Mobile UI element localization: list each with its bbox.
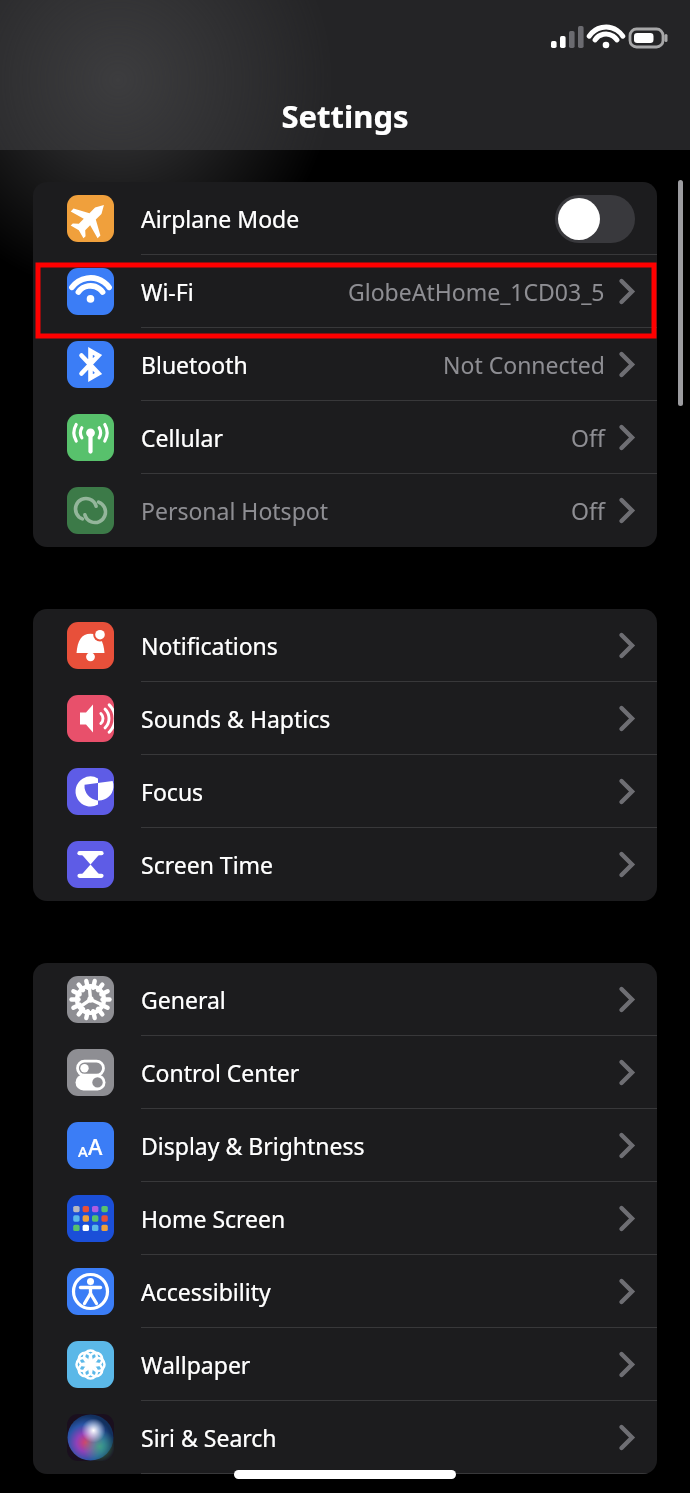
staticText: Airplane Mode bbox=[141, 203, 300, 234]
staticText: Wallpaper bbox=[141, 1349, 251, 1380]
button[interactable]: Focus bbox=[33, 755, 657, 828]
button[interactable]: Home Screen bbox=[33, 1182, 657, 1255]
staticText: Home Screen bbox=[141, 1203, 286, 1234]
button[interactable]: Siri & Search bbox=[33, 1401, 657, 1474]
button[interactable]: Airplane Mode toggle, off bbox=[555, 195, 635, 243]
staticText: Notifications bbox=[141, 630, 278, 661]
staticText: Settings bbox=[281, 95, 409, 137]
button[interactable]: Personal Hotspot bbox=[33, 474, 657, 547]
button[interactable]: Accessibility bbox=[33, 1255, 657, 1328]
staticText: A bbox=[88, 1131, 103, 1161]
button[interactable]: General bbox=[33, 963, 657, 1036]
staticText: A bbox=[78, 1141, 88, 1161]
button[interactable]: Bluetooth bbox=[33, 328, 657, 401]
staticText: Screen Time bbox=[141, 849, 274, 880]
button[interactable]: Airplane Mode bbox=[33, 182, 657, 255]
button[interactable]: Wi-Fi bbox=[33, 255, 657, 328]
staticText: Cellular bbox=[141, 422, 223, 453]
button[interactable]: Cellular bbox=[33, 401, 657, 474]
staticText: Bluetooth bbox=[141, 349, 248, 380]
staticText: Wi-Fi bbox=[141, 276, 194, 307]
staticText: Display & Brightness bbox=[141, 1130, 365, 1161]
staticText: Off bbox=[571, 495, 605, 526]
button[interactable]: Notifications bbox=[33, 609, 657, 682]
staticText: Not Connected bbox=[443, 349, 605, 380]
staticText: Sounds & Haptics bbox=[141, 703, 331, 734]
staticText: Accessibility bbox=[141, 1276, 271, 1307]
staticText: Siri & Search bbox=[141, 1422, 277, 1453]
button[interactable]: Control Center bbox=[33, 1036, 657, 1109]
staticText: Personal Hotspot bbox=[141, 495, 328, 526]
staticText: Control Center bbox=[141, 1057, 300, 1088]
staticText: GlobeAtHome_1CD03_5 bbox=[348, 276, 605, 307]
button[interactable]: A bbox=[33, 1109, 657, 1182]
button[interactable]: Wallpaper bbox=[33, 1328, 657, 1401]
button[interactable]: Screen Time bbox=[33, 828, 657, 901]
button[interactable]: Sounds & Haptics bbox=[33, 682, 657, 755]
staticText: General bbox=[141, 984, 226, 1015]
staticText: Focus bbox=[141, 776, 204, 807]
staticText: Off bbox=[571, 422, 605, 453]
